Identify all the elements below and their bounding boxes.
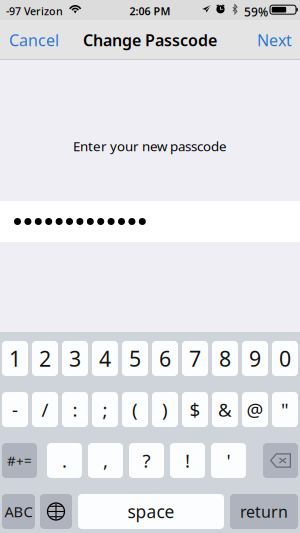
button[interactable]: Next — [238, 20, 300, 60]
button[interactable]: / — [32, 392, 58, 427]
staticText: & — [218, 397, 232, 422]
staticText: @ — [246, 397, 263, 422]
button[interactable]: 1 — [2, 341, 28, 376]
staticText: -97 Verizon — [6, 4, 63, 18]
button[interactable]: ( — [122, 392, 148, 427]
button[interactable]: 2 — [32, 341, 58, 376]
staticText: 2 — [39, 344, 51, 373]
staticText: 6 — [159, 344, 171, 373]
button[interactable]: ) — [152, 392, 178, 427]
staticText: return — [240, 501, 288, 522]
button[interactable]: Next keyboard — [40, 494, 72, 529]
staticText: 59% — [244, 4, 268, 20]
staticText: 0 — [279, 344, 291, 373]
button[interactable]: return — [230, 494, 298, 529]
button[interactable]: : — [62, 392, 88, 427]
button[interactable]: #+= — [2, 443, 37, 478]
staticText: / — [41, 397, 48, 422]
staticText: ( — [132, 397, 138, 422]
staticText: ? — [142, 448, 150, 473]
button[interactable]: ABC — [2, 494, 35, 529]
button[interactable]: 6 — [152, 341, 178, 376]
staticText: Next — [257, 29, 292, 51]
staticText: 8 — [219, 344, 231, 373]
button[interactable]: 0 — [272, 341, 298, 376]
staticText: 4 — [99, 344, 111, 373]
button[interactable]: , — [88, 443, 123, 478]
button[interactable]: 9 — [242, 341, 268, 376]
staticText: - — [12, 397, 18, 422]
staticText: 7 — [189, 344, 201, 373]
button[interactable]: 7 — [182, 341, 208, 376]
staticText: space — [127, 500, 174, 523]
staticText: : — [72, 397, 77, 422]
staticText: " — [281, 397, 289, 422]
staticText: Enter your new passcode — [73, 137, 227, 155]
button[interactable]: . — [47, 443, 82, 478]
button[interactable]: - — [2, 392, 28, 427]
staticText: 5 — [129, 344, 141, 373]
button[interactable]: " — [272, 392, 298, 427]
staticText: 3 — [69, 344, 81, 373]
staticText: . — [62, 448, 67, 473]
staticText: 1 — [9, 344, 21, 373]
button[interactable]: $ — [182, 392, 208, 427]
staticText: #+= — [7, 452, 32, 469]
staticText: 2:06 PM — [129, 4, 170, 18]
button[interactable]: Delete — [263, 443, 298, 478]
staticText: Cancel — [9, 29, 59, 51]
button[interactable]: 5 — [122, 341, 148, 376]
button[interactable]: Cancel — [0, 20, 79, 60]
button[interactable]: 4 — [92, 341, 118, 376]
staticText: , — [103, 448, 108, 473]
button[interactable]: 3 — [62, 341, 88, 376]
staticText: ABC — [4, 502, 32, 521]
button[interactable]: ! — [170, 443, 205, 478]
staticText: ; — [102, 397, 107, 422]
staticText: ) — [162, 397, 168, 422]
staticText: 9 — [249, 344, 261, 373]
button[interactable]: 8 — [212, 341, 238, 376]
staticText: ' — [226, 448, 230, 473]
staticText: $ — [189, 397, 200, 422]
button[interactable]: ' — [211, 443, 246, 478]
staticText: ! — [185, 448, 190, 473]
staticText: Change Passcode — [83, 29, 217, 51]
button[interactable]: space — [78, 494, 224, 529]
button[interactable]: ; — [92, 392, 118, 427]
button[interactable]: @ — [242, 392, 268, 427]
button[interactable]: & — [212, 392, 238, 427]
button[interactable]: ? — [129, 443, 164, 478]
